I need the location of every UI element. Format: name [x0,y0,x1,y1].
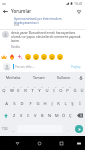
staticText: O [59,88,63,94]
button[interactable]: İ [76,96,83,109]
staticText: H [43,101,47,107]
staticText: Ü [80,88,84,94]
button[interactable]: Home [28,136,50,150]
staticText: 9 [62,85,64,88]
staticText: L [64,101,67,107]
staticText: Ö [62,113,66,118]
staticText: 2 [13,85,15,88]
staticText: T [31,88,34,94]
button[interactable]: 2 [8,83,15,96]
button[interactable]: Sparkles [16,53,24,61]
button[interactable]: F [26,96,34,109]
staticText: N [48,113,52,118]
staticText: P [66,88,69,94]
button[interactable]: D [18,96,26,109]
button[interactable]: Back [2,8,9,15]
button[interactable]: N [46,109,53,122]
button[interactable]: L [62,96,69,109]
staticText: 0 [69,85,71,88]
button[interactable]: 3 [15,83,22,96]
staticText: U [45,88,49,94]
button[interactable]: Shift [0,109,11,122]
button[interactable]: Crown [0,53,8,61]
button[interactable]: Z [11,109,18,122]
button[interactable]: S [10,96,18,109]
staticText: M [55,113,59,118]
button[interactable]: Joy [56,53,64,61]
staticText: 5 [34,85,36,88]
staticText: R [24,88,27,94]
button[interactable]: M [53,109,60,122]
button[interactable]: J [48,96,55,109]
staticText: E [17,88,20,94]
staticText: 3 [20,85,22,88]
staticText: C [27,113,30,118]
staticText: 4 sa [14,23,19,27]
button[interactable]: Kullanıcı [51,72,76,83]
staticText: #sadeyasamtarzi [14,21,39,25]
staticText: deniz.yazar Bunusheed emek harcayanlara … [11,31,83,43]
button[interactable]: Smile [24,53,32,61]
button[interactable]: ?123 [0,122,10,136]
staticText: Tamam [33,75,45,80]
button[interactable]: 5 [29,83,36,96]
staticText: V [34,113,37,118]
button[interactable]: K [55,96,62,109]
button[interactable]: Paylaş [70,65,82,69]
button[interactable]: Ş [69,96,76,109]
button[interactable]: 4 [22,83,29,96]
button[interactable]: B [39,109,46,122]
button[interactable]: G [34,96,41,109]
button[interactable]: Send [75,125,83,133]
button[interactable]: X [18,109,25,122]
staticText: Yanıtla [11,45,20,49]
button[interactable]: A [2,96,10,109]
staticText: 8 [55,85,57,88]
button[interactable]: Laugh [32,53,40,61]
staticText: 1 [5,85,7,88]
staticText: Yorumlar [11,8,32,14]
button[interactable]: Ç [67,109,74,122]
staticText: , [13,127,14,132]
staticText: A [5,101,8,107]
staticText: Merhaba [6,75,21,80]
staticText: Q [2,88,6,94]
button[interactable]: Comma [10,122,17,136]
staticText: 6 [41,85,43,88]
staticText: D [20,101,24,107]
staticText: 4 [27,85,29,88]
button[interactable]: Fire [8,53,16,61]
button[interactable]: Ğ [71,83,78,96]
button[interactable]: V [32,109,39,122]
staticText: I [53,88,55,94]
staticText: Z [13,113,16,118]
button[interactable]: 9 [57,83,64,96]
button[interactable]: 6 [36,83,43,96]
button[interactable]: Share [75,8,82,15]
staticText: #yenisezonbasliyor #minimalizm [14,17,62,21]
button[interactable]: deniz.yazar Bunusheed emek harcayanlara … [2,31,83,49]
button[interactable]: Merhaba [0,72,26,83]
button[interactable]: C [25,109,32,122]
button[interactable]: Backspace [74,109,85,122]
button[interactable]: Ü [78,83,85,96]
button[interactable]: Recents [50,136,72,150]
button[interactable]: Close keyboard [6,136,28,150]
staticText: İ [79,101,81,107]
button[interactable]: Ö [60,109,67,122]
button[interactable]: Grin [48,53,56,61]
staticText: W [10,88,14,94]
button[interactable]: Tamam [26,72,51,83]
button[interactable]: 7 [43,83,50,96]
button[interactable]: 1 [0,83,8,96]
button[interactable]: 8 [50,83,57,96]
button[interactable]: H [41,96,48,109]
button[interactable]: Keyboard layout [72,136,85,150]
button[interactable]: Voice input [76,72,85,83]
staticText: X [20,113,23,118]
staticText: B [41,113,44,118]
button[interactable]: 0 [64,83,71,96]
button[interactable]: Heart eyes [40,53,48,61]
